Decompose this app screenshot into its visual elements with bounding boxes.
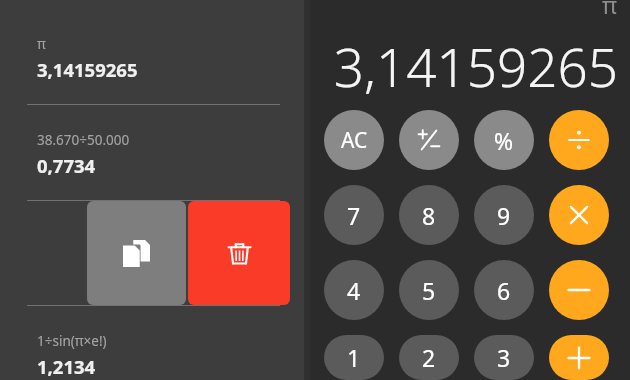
button[interactable]: 4 — [324, 260, 384, 320]
staticText: 2 — [422, 342, 436, 373]
button[interactable]: 38.670÷50.000 — [0, 131, 304, 178]
staticText: 38.670÷50.000 — [37, 131, 130, 149]
button[interactable]: 6 — [474, 260, 534, 320]
button[interactable]: 7 — [324, 185, 384, 245]
button[interactable]: 2 — [399, 335, 459, 380]
button[interactable]: 1÷sin(π×e!) — [0, 332, 304, 379]
staticText: 6 — [497, 275, 511, 306]
button[interactable] — [549, 110, 609, 170]
button[interactable]: % — [474, 110, 534, 170]
staticText: 5 — [422, 275, 436, 306]
staticText: 3,14159265 — [37, 57, 138, 82]
staticText: π — [37, 35, 46, 53]
staticText: 4 — [347, 275, 361, 306]
button[interactable]: 5 — [399, 260, 459, 320]
button[interactable]: 3 — [474, 335, 534, 380]
staticText: % — [494, 125, 514, 156]
button[interactable]: 1 — [324, 335, 384, 380]
staticText: 1 — [347, 342, 361, 373]
staticText: 9 — [497, 200, 511, 231]
button[interactable] — [549, 260, 609, 320]
staticText: π — [602, 0, 618, 20]
button[interactable] — [549, 185, 609, 245]
staticText: AC — [341, 126, 368, 155]
staticText: 1÷sin(π×e!) — [37, 332, 107, 350]
button[interactable]: Plus minus — [399, 110, 459, 170]
button[interactable]: Delete — [188, 201, 290, 305]
staticText: 3 — [497, 342, 511, 373]
staticText: 0,7734 — [37, 153, 96, 178]
staticText: 8 — [422, 200, 436, 231]
staticText: 3,14159265 — [333, 30, 618, 102]
button[interactable]: AC — [324, 110, 384, 170]
button[interactable]: π — [0, 35, 304, 82]
button[interactable]: 9 — [474, 185, 534, 245]
button[interactable]: 8 — [399, 185, 459, 245]
staticText: 7 — [347, 200, 361, 231]
button[interactable] — [549, 335, 609, 380]
button[interactable]: Copy — [87, 201, 186, 305]
staticText: 1,2134 — [37, 354, 96, 379]
